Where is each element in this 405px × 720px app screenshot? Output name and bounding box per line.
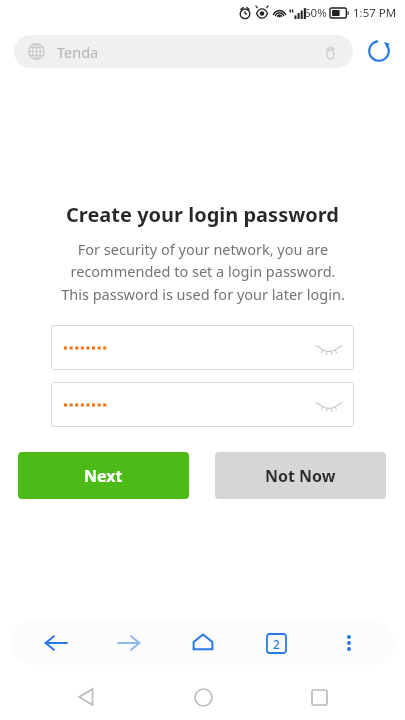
- button[interactable]: Not Now: [215, 452, 386, 499]
- button[interactable]: Show password: [51, 325, 354, 370]
- staticText: 60%: [304, 5, 327, 21]
- button[interactable]: Back: [55, 674, 117, 720]
- button[interactable]: Next: [18, 452, 189, 499]
- button[interactable]: Refresh: [362, 34, 396, 68]
- button[interactable]: Tabs: [249, 621, 303, 665]
- button[interactable]: Show password: [310, 329, 348, 367]
- button[interactable]: Recent apps: [288, 674, 350, 720]
- staticText: Next: [84, 465, 123, 487]
- button[interactable]: Tenda: [14, 35, 353, 68]
- button[interactable]: Back: [29, 621, 83, 665]
- staticText: Not Now: [265, 465, 336, 487]
- button[interactable]: More options: [322, 621, 376, 665]
- staticText: Create your login password: [66, 201, 339, 228]
- staticText: Tenda: [57, 42, 99, 62]
- button[interactable]: Show password: [51, 382, 354, 427]
- staticText: 2: [273, 636, 280, 652]
- button[interactable]: Home: [172, 674, 234, 720]
- button[interactable]: Show password: [310, 386, 348, 424]
- button[interactable]: Forward: [102, 621, 156, 665]
- staticText: 1:57 PM: [353, 5, 397, 21]
- staticText: For security of your network, you are re…: [61, 239, 345, 304]
- button[interactable]: Home: [176, 621, 230, 665]
